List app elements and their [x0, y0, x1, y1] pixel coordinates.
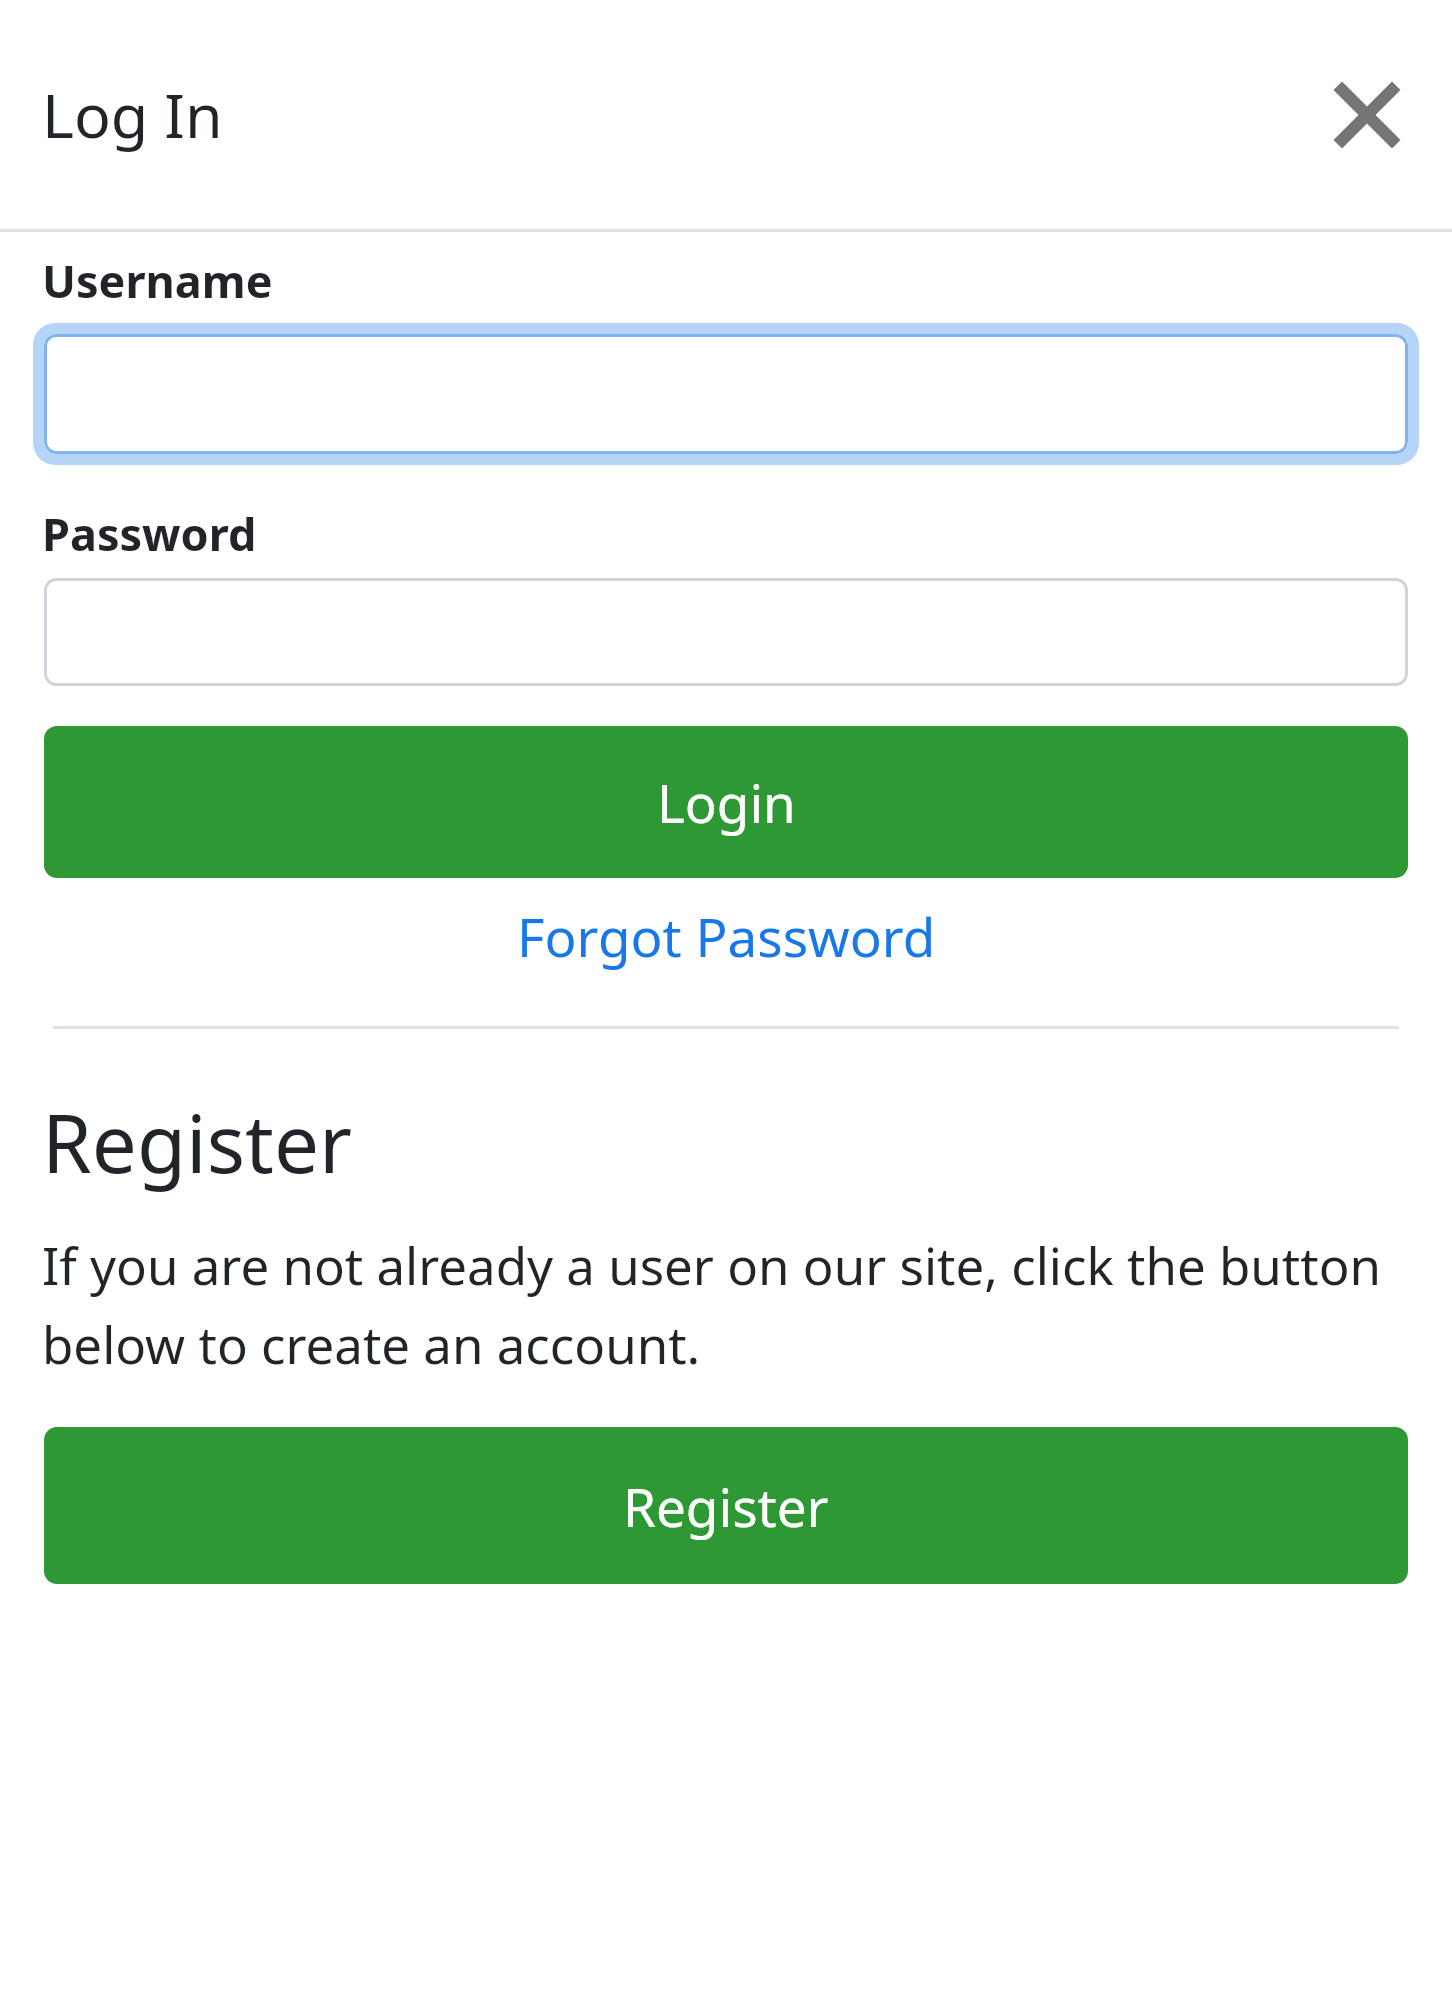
staticText: If you are not already a user on our sit… [42, 1230, 1410, 1379]
button[interactable]: Forgot Password [503, 892, 950, 980]
staticText: Register [623, 1470, 829, 1542]
staticText: Register [42, 1087, 353, 1196]
staticText: Password [42, 503, 257, 564]
button[interactable]: Login [44, 726, 1408, 878]
staticText: Log In [42, 73, 223, 156]
staticText: Forgot Password [517, 900, 936, 972]
staticText: Login [657, 766, 796, 838]
button[interactable]: Register [44, 1427, 1408, 1584]
button[interactable] [44, 334, 1408, 454]
staticText: Username [42, 250, 273, 311]
button[interactable]: Close [1328, 76, 1406, 154]
button[interactable] [44, 578, 1408, 686]
